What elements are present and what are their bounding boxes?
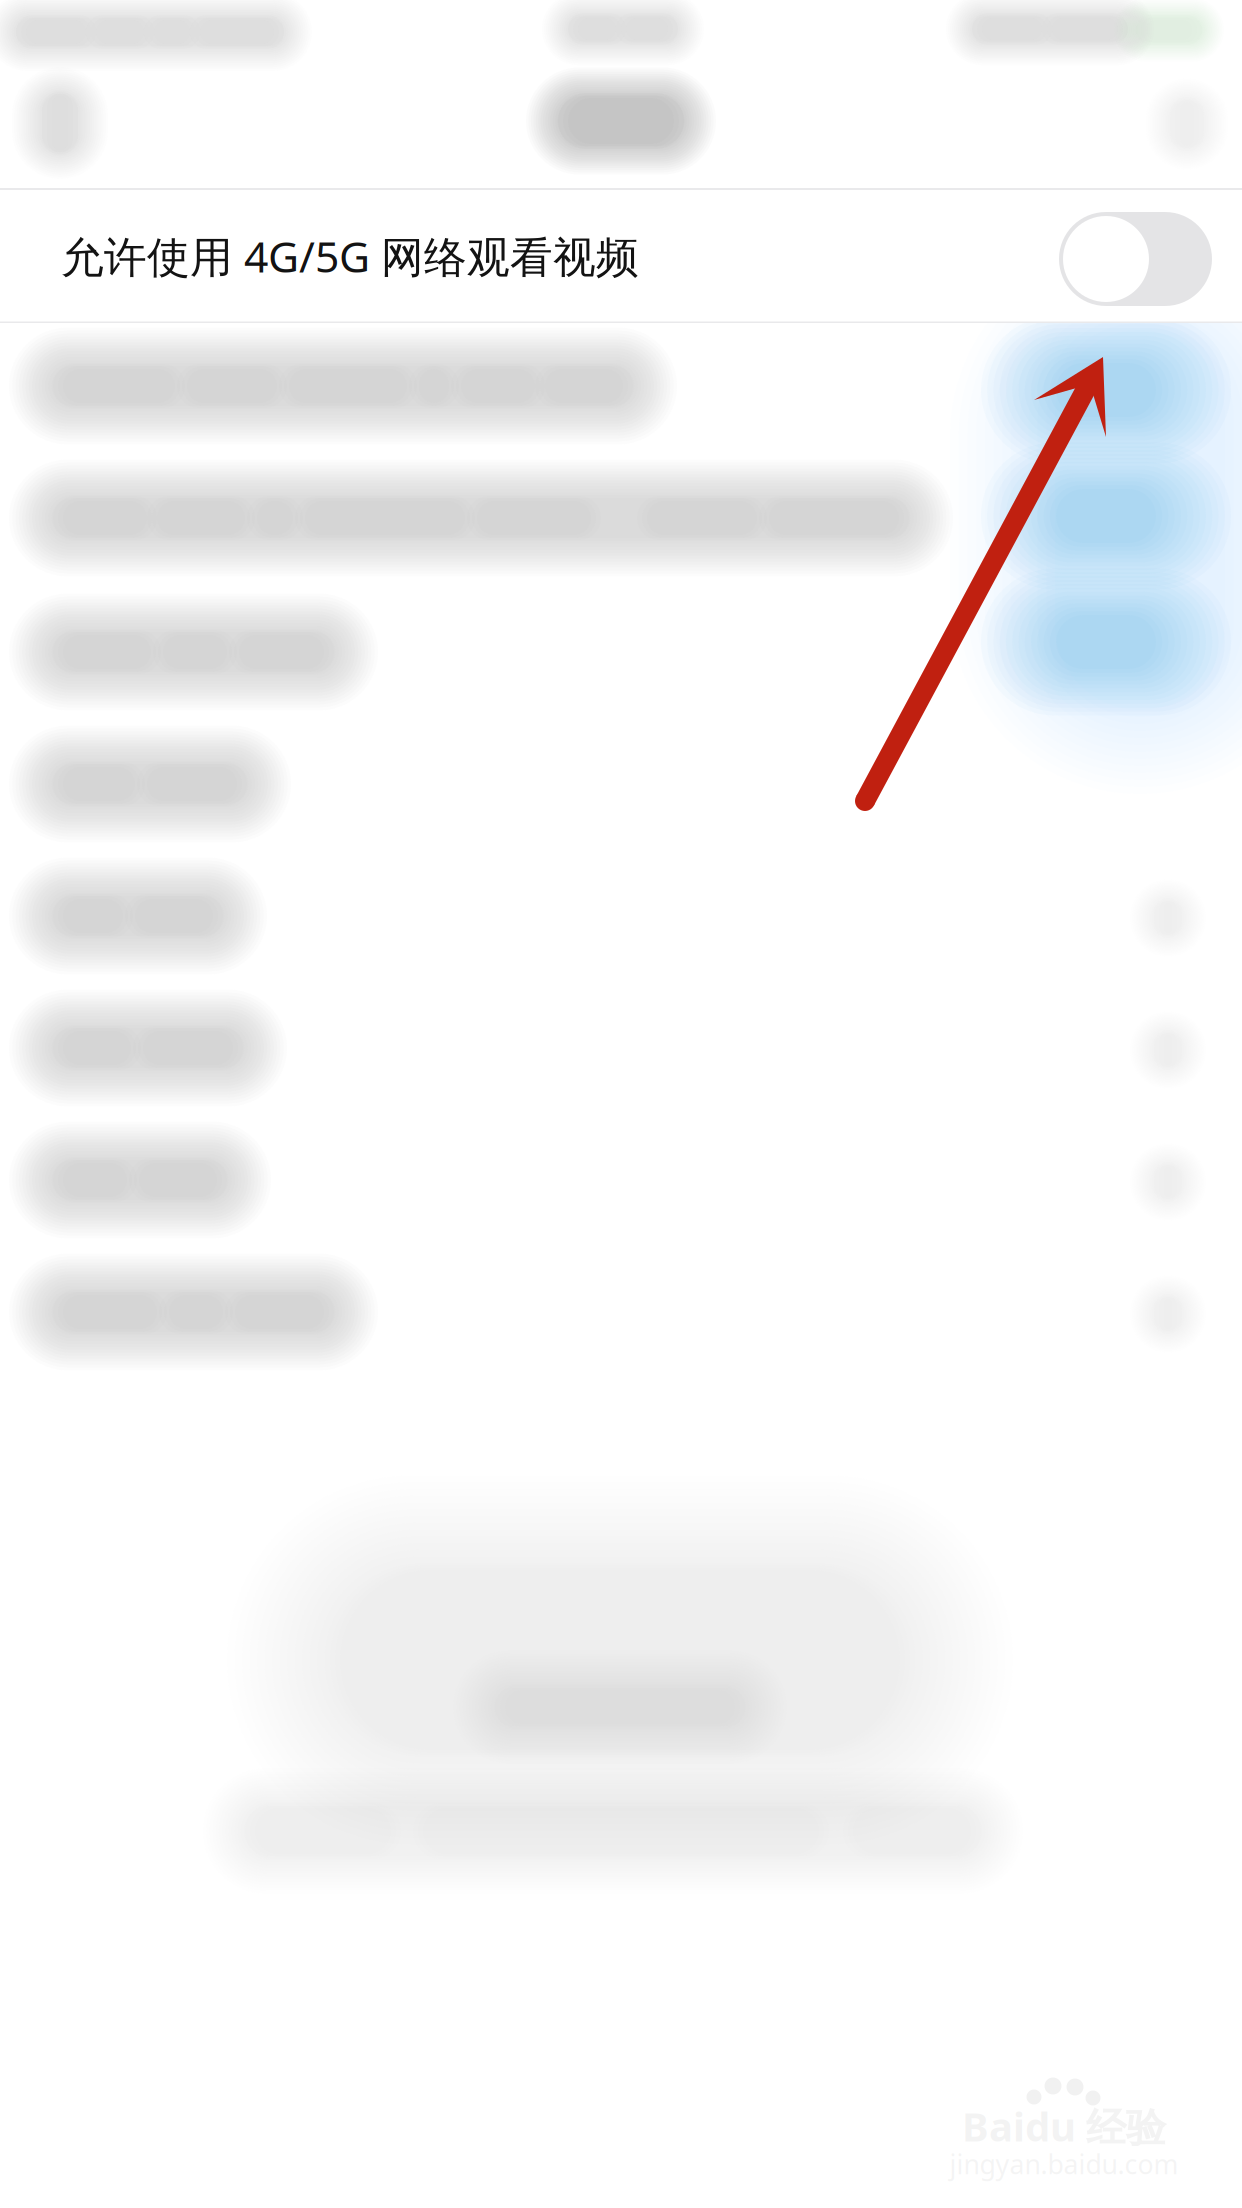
staticText: jingyan.baidu.com	[949, 2146, 1178, 2182]
staticText: 允许使用 4G/5G 网络观看视频	[61, 228, 639, 284]
staticText: Baidu 经验	[962, 2099, 1166, 2153]
button[interactable]: 允许使用 4G/5G 网络观看视频	[0, 190, 1242, 321]
